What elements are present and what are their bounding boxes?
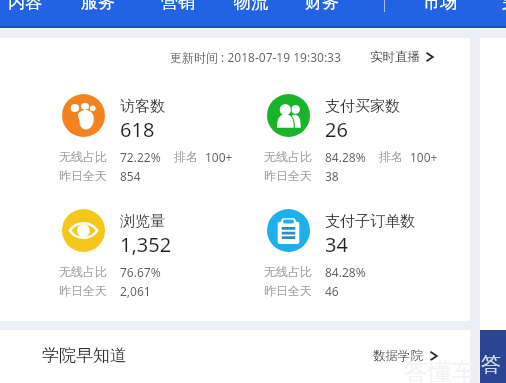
staticText: 854 bbox=[120, 168, 141, 184]
staticText: 无线占比 bbox=[59, 264, 107, 279]
staticText: 物流 bbox=[234, 0, 268, 13]
staticText: 答 bbox=[481, 352, 501, 377]
button[interactable]: 浏览量 bbox=[50, 205, 250, 297]
staticText: 答懂车问 bbox=[404, 357, 500, 383]
staticText: 618 bbox=[120, 116, 155, 143]
staticText: 76.67% bbox=[120, 264, 161, 280]
staticText: 财务 bbox=[305, 0, 339, 13]
button[interactable]: 支付买家数 bbox=[255, 90, 455, 182]
staticText: 2,061 bbox=[120, 283, 151, 299]
staticText: 支付买家数 bbox=[325, 97, 400, 116]
staticText: 昨日全天 bbox=[264, 283, 312, 298]
other: 支付买家数 bbox=[267, 94, 310, 137]
staticText: 34 bbox=[325, 231, 348, 258]
button[interactable]: 财务 bbox=[296, 0, 348, 28]
staticText: 昨日全天 bbox=[264, 168, 312, 183]
staticText: 无线占比 bbox=[264, 264, 312, 279]
staticText: 另 bbox=[501, 0, 506, 13]
button[interactable]: 物流 bbox=[225, 0, 277, 28]
button[interactable]: 市场 bbox=[414, 0, 466, 28]
staticText: 72.22% bbox=[120, 149, 161, 165]
staticText: 内容 bbox=[8, 0, 42, 13]
other: 浏览量 bbox=[62, 209, 105, 252]
staticText: 1,352 bbox=[120, 231, 172, 258]
staticText: 无线占比 bbox=[59, 149, 107, 164]
staticText: 实时直播 bbox=[370, 49, 420, 65]
staticText: 38 bbox=[325, 168, 339, 184]
staticText: 昨日全天 bbox=[59, 283, 107, 298]
staticText: 46 bbox=[325, 283, 339, 299]
button[interactable]: 支付子订单数 bbox=[255, 205, 455, 297]
staticText: 更新时间 : 2018-07-19 19:30:33 bbox=[170, 49, 341, 65]
button[interactable]: 访客数 bbox=[50, 90, 250, 182]
staticText: 浏览量 bbox=[120, 212, 165, 231]
staticText: 排名 bbox=[174, 149, 198, 164]
button[interactable]: 另 bbox=[492, 0, 506, 28]
button[interactable]: 服务 bbox=[72, 0, 124, 28]
staticText: 84.28% bbox=[325, 149, 366, 165]
staticText: 84.28% bbox=[325, 264, 366, 280]
staticText: 数据学院 bbox=[373, 348, 423, 364]
staticText: 支付子订单数 bbox=[325, 212, 415, 231]
other: 支付子订单数 bbox=[267, 209, 310, 252]
staticText: 访客数 bbox=[120, 97, 165, 116]
staticText: 26 bbox=[325, 116, 348, 143]
staticText: 无线占比 bbox=[264, 149, 312, 164]
staticText: 服务 bbox=[81, 0, 115, 13]
button[interactable]: 学院早知道 bbox=[0, 330, 470, 383]
staticText: 100+ bbox=[205, 149, 233, 165]
staticText: 排名 bbox=[379, 149, 403, 164]
staticText: 100+ bbox=[410, 149, 438, 165]
staticText: 市场 bbox=[423, 0, 457, 13]
staticText: 学院早知道 bbox=[42, 345, 127, 366]
staticText: 昨日全天 bbox=[59, 168, 107, 183]
other: 访客数 bbox=[62, 94, 105, 137]
staticText: 营销 bbox=[161, 0, 195, 13]
button[interactable]: 内容 bbox=[0, 0, 51, 28]
button[interactable]: 实时直播 bbox=[367, 46, 437, 68]
button[interactable]: 营销 bbox=[152, 0, 204, 28]
